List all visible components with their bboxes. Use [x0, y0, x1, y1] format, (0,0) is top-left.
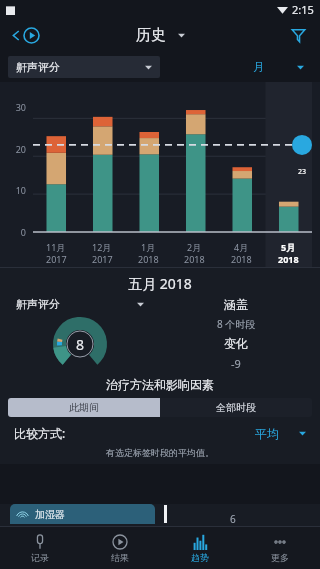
staticText: 2018	[278, 253, 299, 265]
button[interactable]: 1月	[125, 241, 171, 265]
staticText: 有选定标签时段的平均值。	[0, 447, 320, 458]
button[interactable]: 趋势	[160, 527, 240, 569]
button[interactable]: 11月	[33, 241, 79, 265]
staticText: 变化	[224, 336, 248, 351]
staticText: 6	[230, 512, 236, 526]
staticText: 月	[253, 60, 264, 74]
staticText: 更多	[271, 552, 289, 563]
staticText: 8	[76, 335, 85, 354]
button[interactable]: 4月	[218, 241, 265, 265]
button[interactable]: Filter	[287, 24, 310, 47]
staticText: 5月	[281, 241, 296, 253]
button[interactable]: 5月	[265, 241, 312, 265]
staticText: 结果	[111, 552, 129, 563]
staticText: 12月	[92, 241, 112, 253]
button[interactable]: 2月	[171, 241, 218, 265]
button[interactable]: 历史	[130, 23, 191, 48]
staticText: 2018	[138, 253, 159, 265]
staticText: 2017	[46, 253, 67, 265]
staticText: 2018	[184, 253, 205, 265]
staticText: 30	[2, 101, 26, 113]
staticText: 全部时段	[216, 401, 256, 414]
button[interactable]: 更多	[240, 527, 320, 569]
button[interactable]: 记录	[0, 527, 80, 569]
staticText: -9	[231, 356, 241, 371]
staticText: 治疗方法和影响因素	[0, 377, 320, 392]
button[interactable]: 鼾声评分	[16, 297, 144, 311]
staticText: 鼾声评分	[16, 60, 60, 74]
staticText: 10	[2, 184, 26, 196]
staticText: 2月	[187, 241, 202, 253]
button[interactable]: Back to results	[8, 23, 44, 48]
button[interactable]: 比较方式:	[14, 425, 306, 441]
staticText: 23	[292, 167, 312, 177]
staticText: 历史	[136, 26, 166, 45]
button[interactable]: 月	[182, 56, 312, 78]
button[interactable]: 加湿器	[10, 504, 155, 524]
staticText: 此期间	[69, 401, 99, 414]
staticText: 比较方式:	[14, 425, 66, 441]
staticText: 2018	[231, 253, 252, 265]
staticText: 4月	[234, 241, 249, 253]
staticText: 鼾声评分	[16, 297, 60, 311]
staticText: 20	[2, 143, 26, 155]
staticText: 2017	[92, 253, 113, 265]
staticText: 平均	[255, 426, 279, 441]
staticText: 记录	[31, 552, 49, 563]
staticText: 加湿器	[35, 508, 65, 521]
button[interactable]: 结果	[80, 527, 160, 569]
staticText: 2:15	[292, 2, 314, 17]
staticText: 趋势	[191, 552, 209, 563]
staticText: 11月	[46, 241, 66, 253]
staticText: 涵盖	[224, 297, 248, 312]
button[interactable]: 12月	[79, 241, 125, 265]
staticText: 1月	[141, 241, 156, 253]
staticText: 8 个时段	[217, 317, 256, 331]
button[interactable]: 全部时段	[160, 398, 312, 417]
staticText: 五月 2018	[0, 274, 320, 293]
staticText: 0	[2, 226, 26, 238]
button[interactable]: 此期间	[8, 398, 160, 417]
button[interactable]: 鼾声评分	[8, 56, 160, 78]
